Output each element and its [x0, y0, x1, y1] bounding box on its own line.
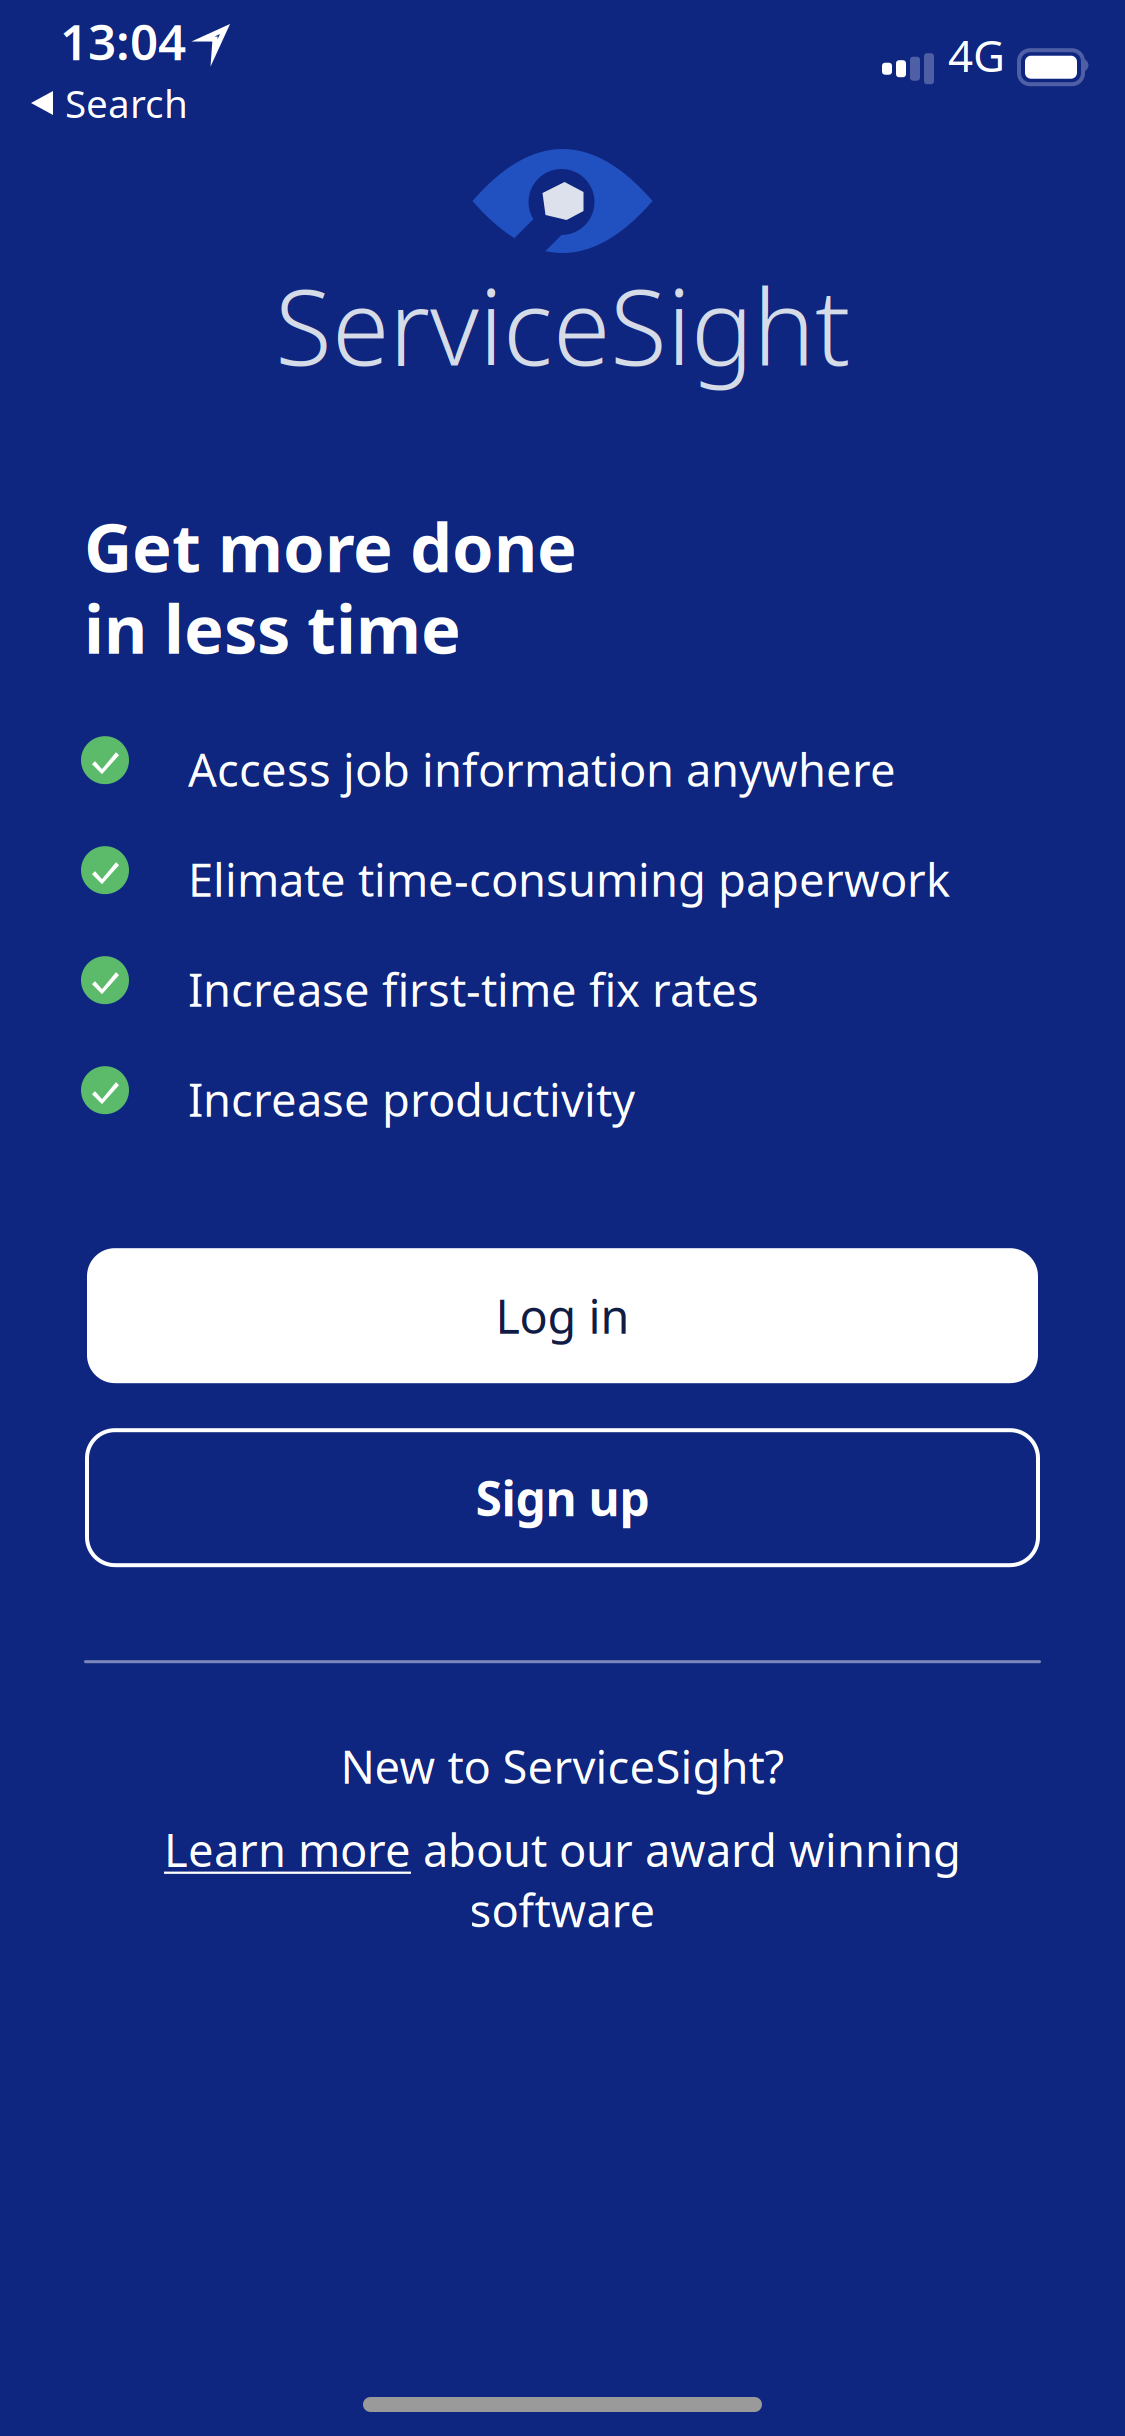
staticText: Search	[65, 77, 188, 129]
button[interactable]: Sign up	[87, 1430, 1038, 1565]
staticText: Learn more	[164, 1819, 411, 1880]
staticText: New to ServiceSight?	[340, 1736, 784, 1796]
staticText: software	[469, 1880, 655, 1940]
staticText: in less time	[84, 584, 461, 672]
staticText: 4G	[948, 26, 1005, 84]
staticText: ServiceSight	[275, 256, 850, 394]
staticText: Elimate time-consuming paperwork	[188, 849, 950, 909]
button[interactable]: Learn more	[164, 1819, 411, 1880]
staticText: Sign up	[475, 1466, 649, 1529]
staticText: Access job information anywhere	[188, 739, 896, 799]
staticText: Increase first-time fix rates	[188, 959, 759, 1019]
staticText: 13:04	[60, 8, 186, 74]
staticText: Increase productivity	[188, 1069, 635, 1129]
staticText: Log in	[495, 1285, 629, 1347]
button[interactable]: Back to Search	[24, 73, 194, 133]
staticText: about our award winning	[411, 1819, 961, 1880]
staticText: Get more done	[84, 502, 577, 591]
button[interactable]: Log in	[87, 1248, 1038, 1383]
